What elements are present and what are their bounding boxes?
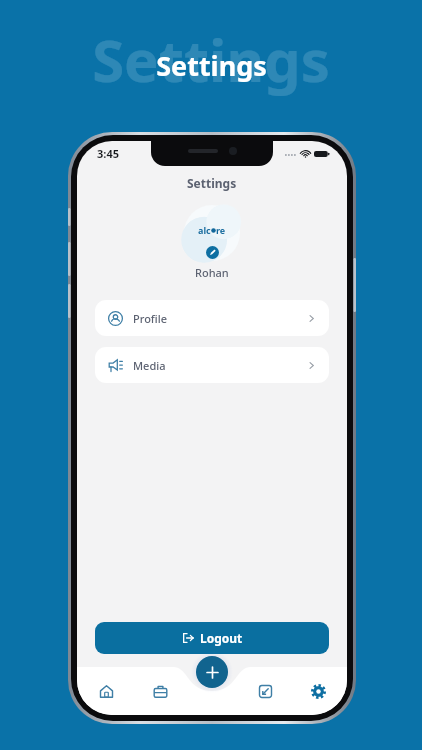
button[interactable]: Logout <box>95 622 329 654</box>
staticText: Logout <box>200 630 243 646</box>
button[interactable]: Work <box>137 669 183 713</box>
staticText: alc <box>198 224 211 236</box>
staticText: re <box>216 224 226 236</box>
staticText: Settings <box>92 20 330 99</box>
staticText: Profile <box>133 311 168 326</box>
button[interactable]: Change profile photo <box>184 205 240 261</box>
button[interactable]: Add <box>196 656 228 688</box>
button[interactable]: Profile <box>95 300 329 336</box>
staticText: Media <box>133 358 166 373</box>
button[interactable]: Settings <box>295 669 341 713</box>
staticText: Settings <box>187 175 237 191</box>
staticText: 3:45 <box>97 146 119 161</box>
staticText: Rohan <box>195 265 229 280</box>
button[interactable]: Expand <box>242 669 288 713</box>
button[interactable]: Media <box>95 347 329 383</box>
staticText: Settings <box>156 47 267 84</box>
button[interactable]: Home <box>83 669 129 713</box>
